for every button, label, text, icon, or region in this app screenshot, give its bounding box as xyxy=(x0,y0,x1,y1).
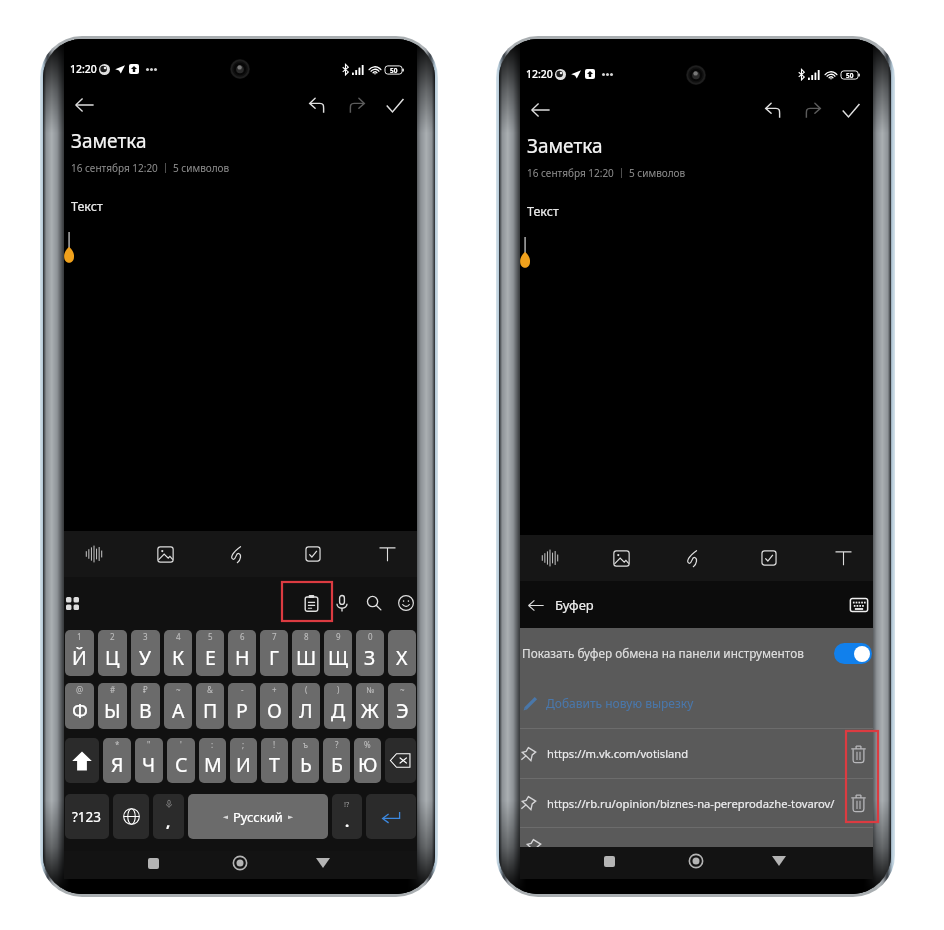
staticText: ъ xyxy=(303,739,308,750)
button[interactable]: Enter xyxy=(366,794,416,839)
staticText: М xyxy=(204,751,222,778)
staticText: Н xyxy=(235,644,250,671)
button[interactable]: @ xyxy=(65,683,94,729)
button[interactable]: 5 xyxy=(196,630,224,676)
button[interactable]: Показать буфер обмена на панели инструме… xyxy=(520,628,873,678)
staticText: Т xyxy=(269,751,280,778)
button[interactable]: 1 xyxy=(65,630,94,676)
button[interactable]: Home xyxy=(681,846,711,876)
button[interactable]: Image xyxy=(603,535,639,581)
button[interactable]: Backspace xyxy=(385,738,416,783)
button[interactable]: Recents xyxy=(594,846,624,876)
button[interactable]: Back xyxy=(68,89,100,121)
button[interactable]: 9 xyxy=(324,630,352,676)
button[interactable]: Done xyxy=(835,94,867,126)
button[interactable]: ъ xyxy=(292,738,319,783)
staticText: И xyxy=(236,751,251,778)
button[interactable]: Draw xyxy=(219,531,255,577)
button[interactable]: https://rb.ru/opinion/biznes-na-pereprod… xyxy=(520,779,873,827)
button[interactable]: Keyboard menu xyxy=(58,589,86,617)
button[interactable]: № xyxy=(356,683,384,729)
staticText: 1 xyxy=(77,631,82,642)
button[interactable]: + xyxy=(260,683,288,729)
button[interactable]: Comma xyxy=(153,794,184,839)
staticText: # xyxy=(110,684,116,695)
button[interactable]: Audio xyxy=(532,535,568,581)
staticText: В xyxy=(139,697,152,724)
button[interactable]: Redo xyxy=(796,94,828,126)
button[interactable]: Delete xyxy=(843,779,873,827)
staticText: 50 xyxy=(846,71,854,80)
staticText: 6 xyxy=(240,631,245,642)
button[interactable]: Voice input xyxy=(327,588,357,618)
button[interactable]: ~ xyxy=(388,683,416,729)
button[interactable]: # xyxy=(98,683,127,729)
staticText: ₽ xyxy=(143,684,148,695)
button[interactable]: Format xyxy=(369,531,405,577)
button[interactable]: Clipboard xyxy=(285,583,337,624)
button[interactable]: & xyxy=(196,683,224,729)
button[interactable]: Period xyxy=(332,794,362,839)
button[interactable]: Checklist xyxy=(295,531,331,577)
button[interactable]: Language xyxy=(113,794,149,839)
button[interactable]: - xyxy=(228,683,256,729)
staticText: !? xyxy=(344,799,350,809)
button[interactable]: ' xyxy=(167,738,195,783)
button[interactable]: Home xyxy=(225,849,255,877)
staticText: П xyxy=(203,697,218,724)
button[interactable]: Checklist xyxy=(751,535,787,581)
button[interactable]: Emoji xyxy=(391,588,421,618)
staticText: Текст xyxy=(527,203,559,220)
staticText: - xyxy=(241,684,244,695)
button[interactable]: ) xyxy=(324,683,352,729)
staticText: Заметка xyxy=(71,128,147,154)
staticText: ? xyxy=(335,739,339,750)
button[interactable]: Done xyxy=(379,89,411,121)
staticText: 9 xyxy=(336,631,341,642)
button[interactable]: " xyxy=(135,738,163,783)
staticText: ◄ xyxy=(223,813,228,821)
button[interactable]: 6 xyxy=(228,630,256,676)
button[interactable]: Undo xyxy=(757,94,789,126)
button[interactable]: ? xyxy=(323,738,350,783)
button[interactable]: ; xyxy=(230,738,257,783)
button[interactable]: Search xyxy=(359,588,389,618)
button[interactable]: Добавить новую вырезку xyxy=(520,678,873,728)
button[interactable]: * xyxy=(103,738,131,783)
button[interactable]: Image xyxy=(147,531,183,577)
button[interactable]: % xyxy=(354,738,381,783)
staticText: ► xyxy=(288,813,293,821)
button[interactable]: 7 xyxy=(260,630,288,676)
button[interactable]: Redo xyxy=(340,89,372,121)
button[interactable]: Back xyxy=(524,94,556,126)
staticText: О xyxy=(267,697,282,724)
button[interactable]: Back xyxy=(523,592,549,618)
button[interactable]: ~ xyxy=(164,683,192,729)
button[interactable]: 4 xyxy=(164,630,192,676)
button[interactable]: 0 xyxy=(356,630,384,676)
button[interactable]: Space xyxy=(188,794,328,839)
button[interactable]: Shift xyxy=(65,738,99,783)
button[interactable]: Recents xyxy=(138,849,168,877)
button[interactable]: ( xyxy=(292,683,320,729)
button[interactable]: : xyxy=(199,738,226,783)
button[interactable]: Format xyxy=(825,535,861,581)
button[interactable]: Delete xyxy=(843,729,873,778)
button[interactable]: Back xyxy=(764,846,794,876)
button[interactable]: 8 xyxy=(292,630,320,676)
button[interactable]: Symbols xyxy=(65,794,109,839)
button[interactable]: ! xyxy=(261,738,288,783)
staticText: https://m.vk.com/votisland xyxy=(547,746,689,761)
staticText: Г xyxy=(269,644,279,671)
button[interactable]: Back xyxy=(308,849,338,877)
button[interactable]: https://m.vk.com/votisland xyxy=(520,729,873,778)
button[interactable]: Х xyxy=(388,630,416,676)
button[interactable]: Audio xyxy=(76,531,112,577)
button[interactable]: 2 xyxy=(98,630,127,676)
button[interactable]: Undo xyxy=(301,89,333,121)
button[interactable]: ₽ xyxy=(131,683,160,729)
button[interactable]: Show keyboard xyxy=(846,592,872,618)
staticText: Р xyxy=(236,697,248,724)
button[interactable]: Draw xyxy=(675,535,711,581)
button[interactable]: 3 xyxy=(131,630,160,676)
